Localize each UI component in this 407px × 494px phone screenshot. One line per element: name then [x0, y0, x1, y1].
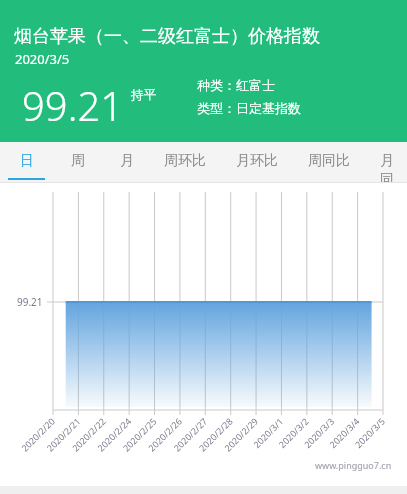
staticText: 99.21: [22, 78, 124, 132]
button[interactable]: 月同比: [371, 142, 407, 183]
button[interactable]: 月环比: [227, 142, 287, 183]
staticText: 种类：红富士: [197, 77, 275, 93]
staticText: 类型：日定基指数: [197, 100, 301, 116]
button[interactable]: 周同比: [299, 142, 359, 183]
staticText: 月环比: [236, 152, 278, 170]
staticText: 2020/3/5: [15, 50, 70, 68]
staticText: 月: [120, 152, 134, 170]
button[interactable]: 周环比: [155, 142, 215, 183]
staticText: 周环比: [164, 152, 206, 170]
staticText: 周同比: [308, 152, 350, 170]
staticText: 持平: [131, 87, 156, 103]
staticText: 周: [71, 152, 85, 170]
button[interactable]: 日: [8, 142, 45, 183]
staticText: 月同比: [380, 152, 398, 183]
staticText: 日: [20, 152, 34, 170]
staticText: 烟台苹果（一、二级红富士）价格指数: [14, 25, 320, 48]
button[interactable]: 月: [111, 142, 143, 183]
button[interactable]: 周: [62, 142, 94, 183]
